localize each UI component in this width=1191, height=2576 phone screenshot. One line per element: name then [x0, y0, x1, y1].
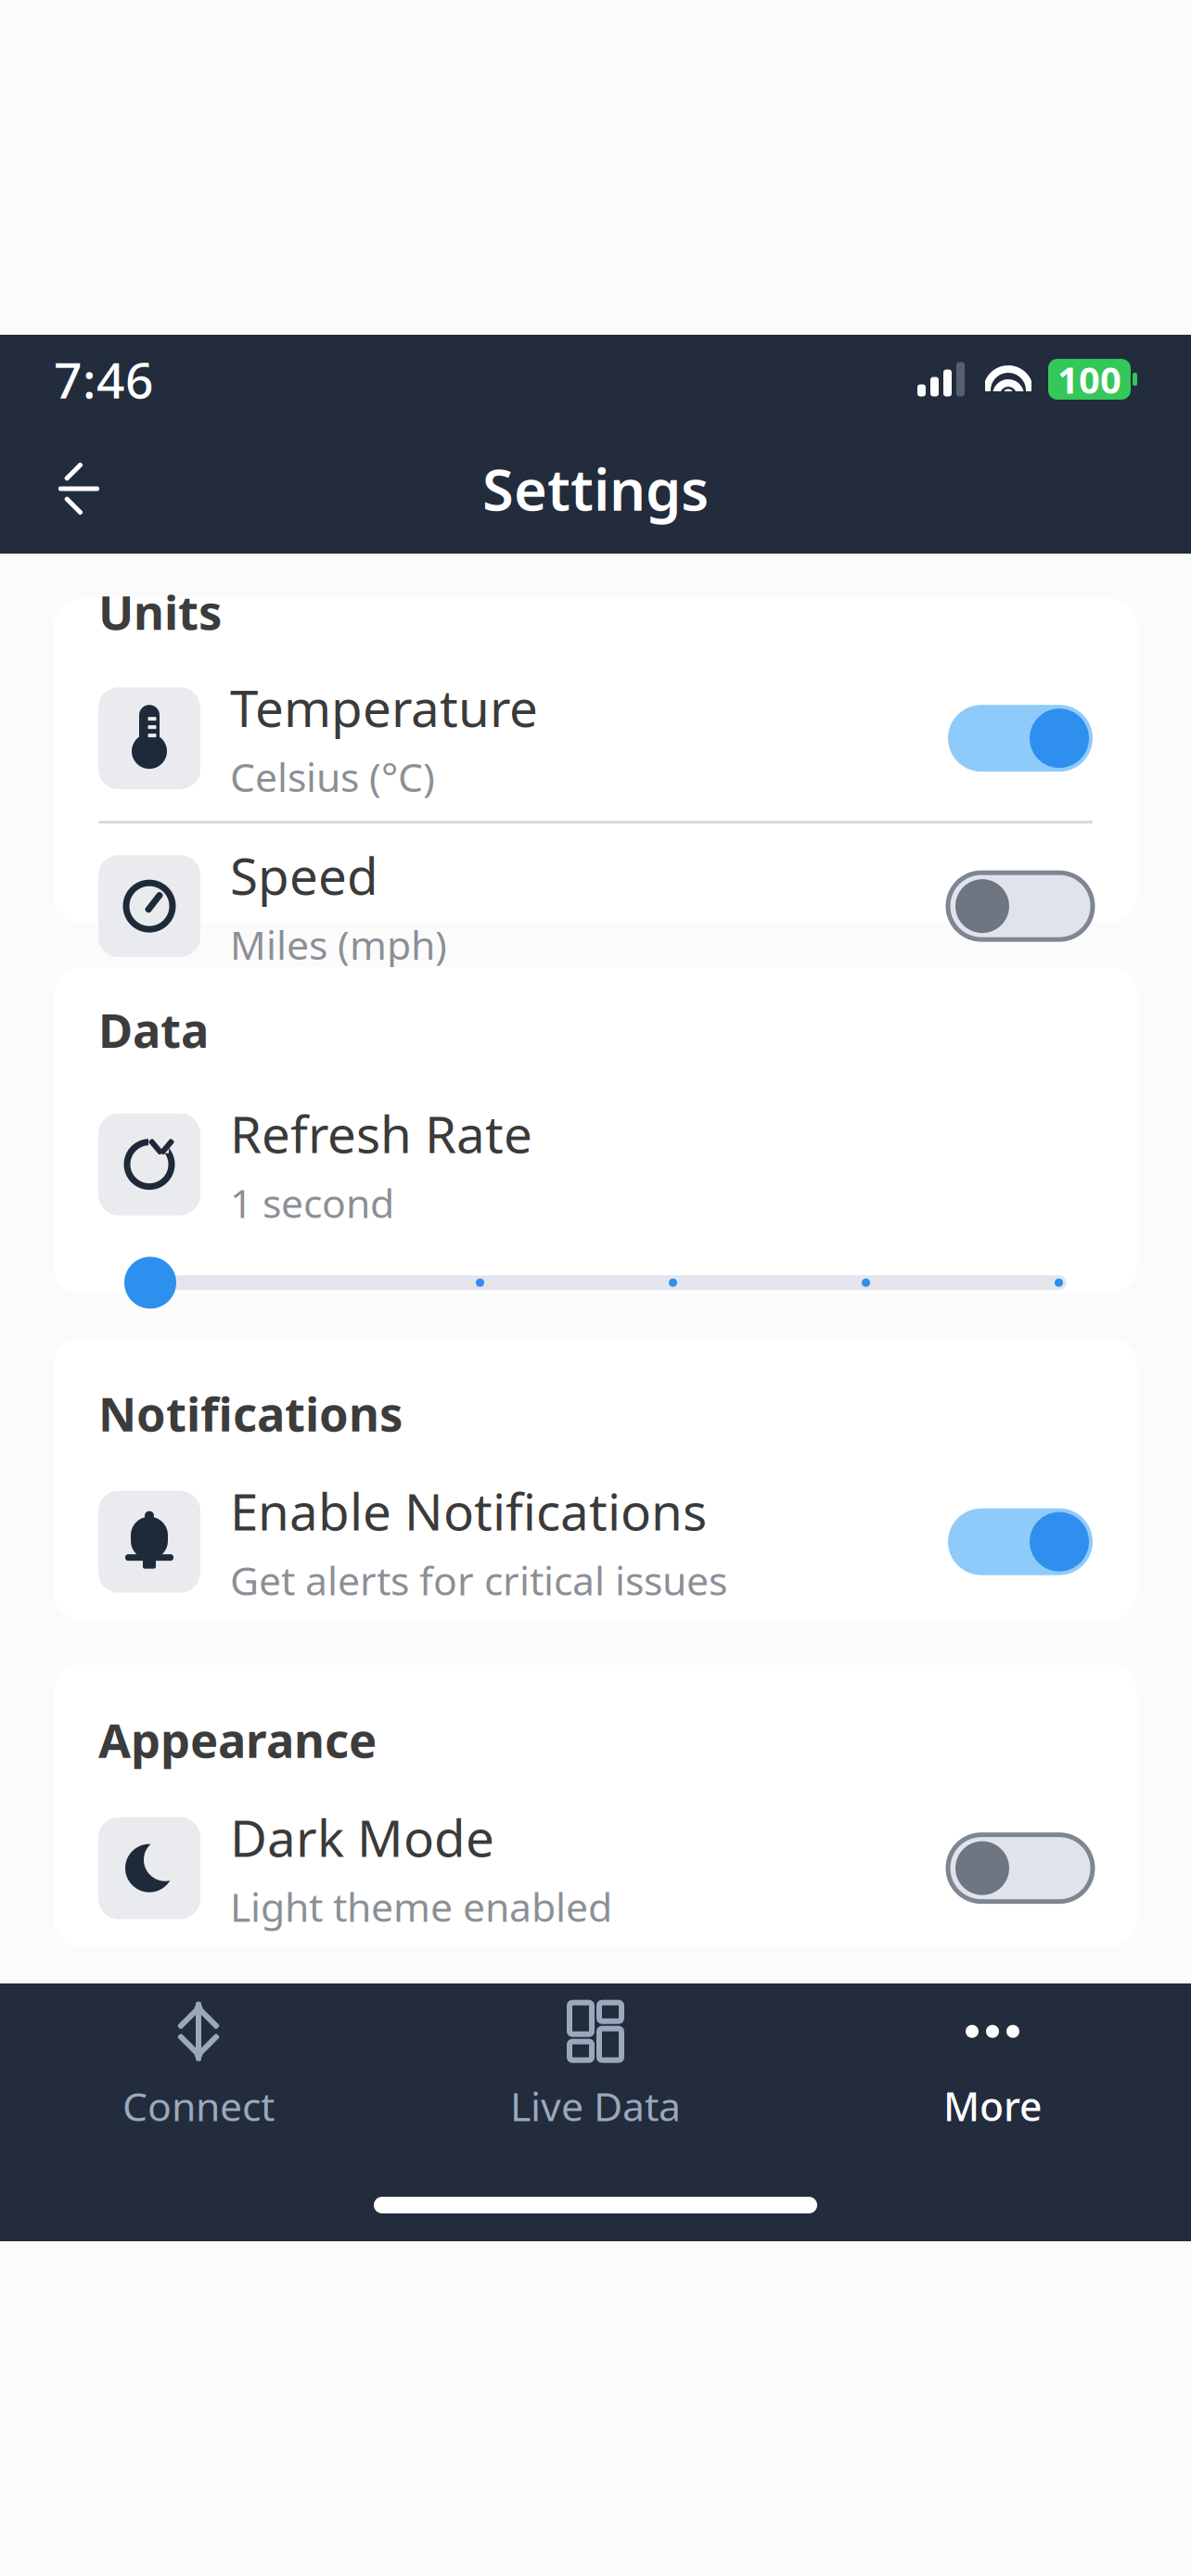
staticText: 1 second — [230, 1176, 394, 1229]
button[interactable]: Connect — [0, 1996, 397, 2136]
staticText: Live Data — [510, 2080, 681, 2132]
staticText: Temperature — [230, 674, 538, 741]
staticText: Get alerts for critical issues — [230, 1554, 727, 1606]
button[interactable]: Live Data — [397, 1996, 794, 2136]
button[interactable]: Dark Mode — [54, 1786, 1137, 1951]
staticText: Appearance — [98, 1708, 377, 1771]
button[interactable]: More — [794, 1996, 1191, 2136]
staticText: Settings — [482, 451, 709, 526]
staticText: Celsius (°C) — [230, 750, 435, 803]
staticText: Miles (mph) — [230, 918, 447, 971]
staticText: More — [943, 2080, 1042, 2132]
staticText: Notifications — [98, 1382, 403, 1444]
staticText: Data — [98, 998, 209, 1061]
staticText: 7:46 — [54, 346, 154, 412]
button[interactable]: Speed — [54, 824, 1137, 989]
staticText: Dark Mode — [230, 1804, 494, 1871]
button[interactable]: Enable Notifications — [54, 1459, 1137, 1624]
staticText: Connect — [122, 2080, 275, 2132]
button[interactable]: Back — [39, 449, 119, 529]
staticText: Units — [98, 580, 222, 643]
staticText: Refresh Rate — [230, 1100, 532, 1167]
staticText: Light theme enabled — [230, 1880, 612, 1933]
button[interactable]: Temperature — [54, 656, 1137, 821]
staticText: Speed — [230, 842, 378, 909]
staticText: 100 — [1057, 355, 1121, 404]
staticText: Enable Notifications — [230, 1477, 707, 1544]
